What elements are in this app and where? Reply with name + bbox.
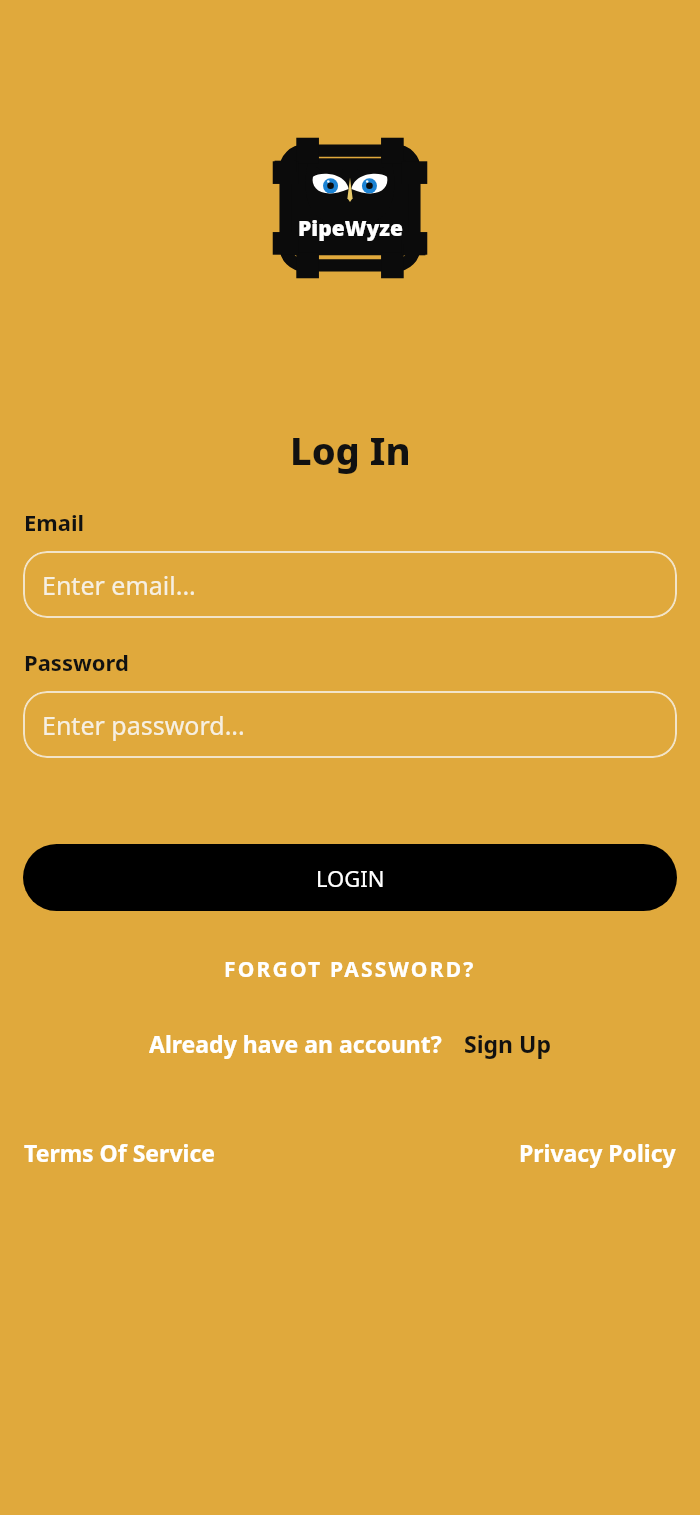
button[interactable]: Sign Up (464, 1028, 551, 1059)
staticText: Password (24, 647, 129, 677)
button[interactable]: Enter email... (23, 551, 677, 618)
staticText: Already have an account? (149, 1028, 442, 1059)
button[interactable]: Terms Of Service (24, 1137, 215, 1168)
staticText: Privacy Policy (519, 1137, 676, 1168)
button[interactable]: FORGOT PASSWORD? (212, 949, 488, 990)
staticText: FORGOT PASSWORD? (224, 955, 476, 984)
staticText: Terms Of Service (24, 1137, 215, 1168)
button[interactable]: Enter password... (23, 691, 677, 758)
staticText: PipeWyze (298, 214, 403, 243)
staticText: Log In (290, 424, 411, 476)
button[interactable]: Privacy Policy (519, 1137, 676, 1168)
other: PipeWyze logo (278, 143, 422, 273)
staticText: Sign Up (464, 1028, 551, 1059)
staticText: Enter password... (42, 708, 245, 742)
button[interactable]: LOGIN (23, 844, 677, 911)
staticText: Email (24, 507, 85, 537)
staticText: LOGIN (316, 863, 385, 893)
staticText: Enter email... (42, 568, 196, 602)
